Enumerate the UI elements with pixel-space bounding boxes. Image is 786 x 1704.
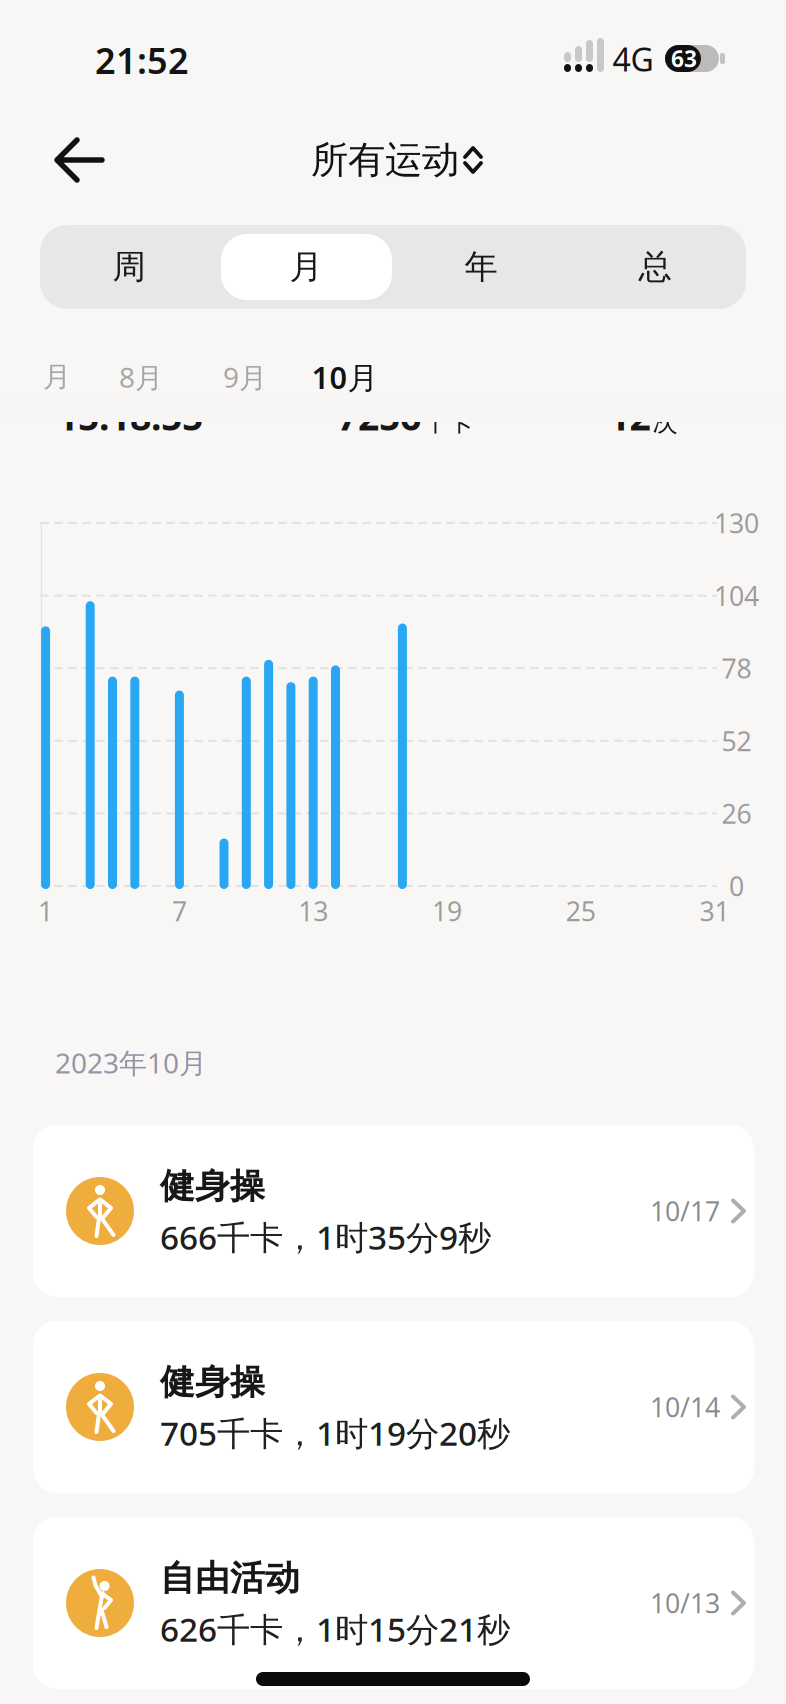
staticText: 7256 bbox=[337, 391, 421, 441]
button[interactable]: 健身操 bbox=[33, 1125, 754, 1297]
button[interactable]: 周 bbox=[44, 225, 214, 309]
staticText: 周 bbox=[112, 246, 145, 287]
staticText: 10/17 bbox=[650, 1193, 720, 1229]
staticText: 10/13 bbox=[650, 1585, 720, 1621]
button[interactable]: 年 bbox=[396, 225, 566, 309]
button[interactable]: 健身操 bbox=[33, 1321, 754, 1493]
staticText: 31 bbox=[700, 893, 730, 929]
staticText: 4G bbox=[612, 38, 653, 80]
staticText: 2023年10月 bbox=[55, 1044, 207, 1081]
staticText: 78 bbox=[721, 650, 751, 686]
staticText: 年 bbox=[464, 246, 497, 287]
button[interactable]: 10月 bbox=[311, 357, 378, 397]
staticText: 104 bbox=[714, 578, 759, 613]
button[interactable]: 月 bbox=[43, 360, 71, 394]
button[interactable]: 总 bbox=[570, 225, 740, 309]
staticText: 52 bbox=[721, 723, 751, 758]
button[interactable]: 自由活动 bbox=[33, 1517, 754, 1689]
button[interactable]: 9月 bbox=[223, 358, 267, 396]
staticText: 26 bbox=[721, 796, 751, 831]
staticText: 自由活动 bbox=[160, 1557, 300, 1600]
staticText: 10月 bbox=[311, 357, 378, 397]
staticText: 21:52 bbox=[95, 36, 189, 84]
staticText: 千卡 bbox=[423, 406, 473, 438]
staticText: 705千卡，1时19分20秒 bbox=[160, 1411, 510, 1455]
staticText: 所有运动 bbox=[311, 137, 459, 183]
staticText: 12 bbox=[608, 391, 650, 441]
staticText: 10/14 bbox=[650, 1389, 720, 1425]
staticText: 626千卡，1时15分21秒 bbox=[160, 1607, 510, 1651]
staticText: 健身操 bbox=[160, 1165, 265, 1208]
button[interactable]: 所有运动 bbox=[311, 137, 481, 183]
staticText: 月 bbox=[43, 360, 71, 394]
button[interactable]: 月 bbox=[221, 225, 391, 309]
staticText: 25 bbox=[566, 893, 596, 929]
staticText: 19 bbox=[432, 893, 462, 929]
staticText: 15:18:55 bbox=[57, 391, 203, 441]
staticText: 63 bbox=[671, 43, 697, 73]
staticText: 健身操 bbox=[160, 1361, 265, 1404]
staticText: 8月 bbox=[119, 358, 163, 396]
staticText: 0 bbox=[729, 868, 744, 904]
button[interactable] bbox=[45, 135, 115, 185]
staticText: 13 bbox=[298, 893, 328, 929]
staticText: 7 bbox=[172, 893, 187, 929]
staticText: 1 bbox=[38, 893, 53, 929]
staticText: 130 bbox=[714, 505, 759, 541]
button[interactable]: 8月 bbox=[119, 358, 163, 396]
staticText: 月 bbox=[289, 246, 322, 287]
staticText: 总 bbox=[638, 246, 671, 287]
staticText: 次 bbox=[652, 406, 677, 438]
staticText: 9月 bbox=[223, 358, 267, 396]
staticText: 666千卡，1时35分9秒 bbox=[160, 1215, 491, 1259]
